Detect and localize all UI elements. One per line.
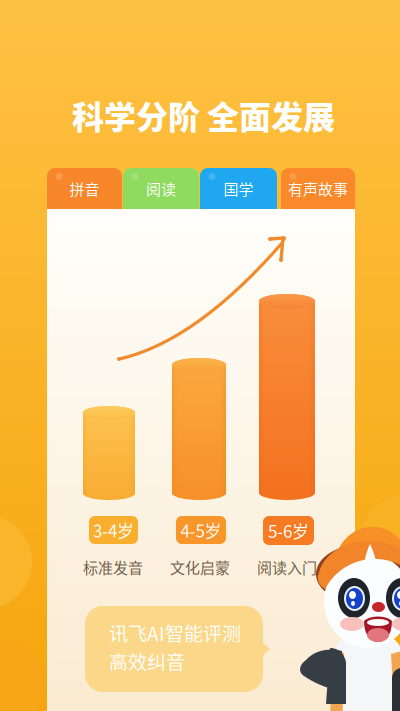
- staticText: 5-6岁: [268, 518, 309, 543]
- button[interactable]: 有声故事: [281, 168, 355, 209]
- staticText: 高效纠音: [109, 647, 185, 675]
- staticText: 4-5岁: [180, 518, 221, 542]
- staticText: 文化启蒙: [170, 556, 230, 578]
- button[interactable]: 拼音: [47, 168, 122, 209]
- staticText: 讯飞AI智能评测: [109, 619, 241, 646]
- button[interactable]: 阅读: [123, 168, 199, 209]
- button[interactable]: 国学: [200, 168, 277, 209]
- staticText: 阅读: [146, 178, 176, 199]
- staticText: 科学分阶 全面发展: [72, 92, 335, 138]
- staticText: 标准发音: [83, 556, 143, 578]
- staticText: 有声故事: [288, 178, 348, 199]
- staticText: 阅读入门: [257, 556, 317, 578]
- staticText: 3-4岁: [93, 518, 134, 542]
- staticText: 国学: [223, 178, 253, 199]
- staticText: 拼音: [69, 178, 99, 199]
